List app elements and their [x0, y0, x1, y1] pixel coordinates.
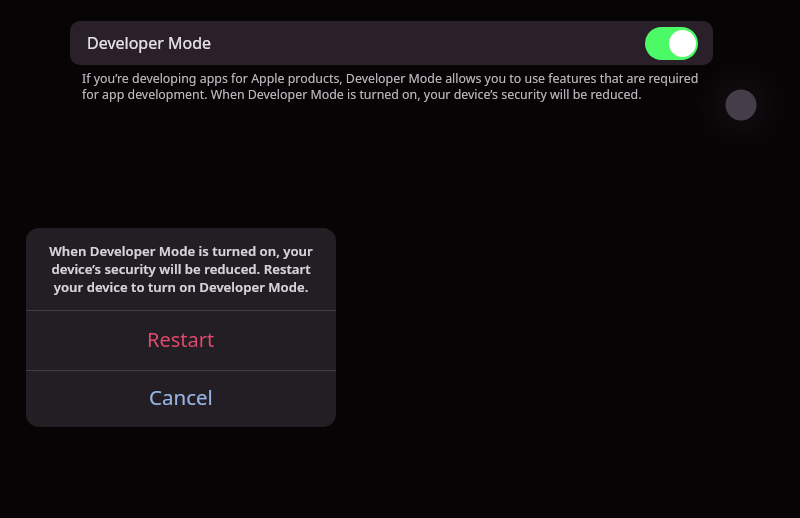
- staticText: Restart: [147, 326, 215, 353]
- other: Touch pointer: [695, 59, 787, 151]
- staticText: When Developer Mode is turned on, your d…: [43, 242, 319, 296]
- button[interactable]: Cancel: [26, 371, 336, 427]
- button[interactable]: Developer Mode toggle: [645, 27, 698, 60]
- button[interactable]: Developer Mode: [70, 21, 713, 65]
- button[interactable]: Restart: [26, 311, 336, 370]
- staticText: If you’re developing apps for Apple prod…: [82, 70, 704, 103]
- staticText: Developer Mode: [87, 32, 212, 54]
- staticText: Cancel: [149, 383, 213, 411]
